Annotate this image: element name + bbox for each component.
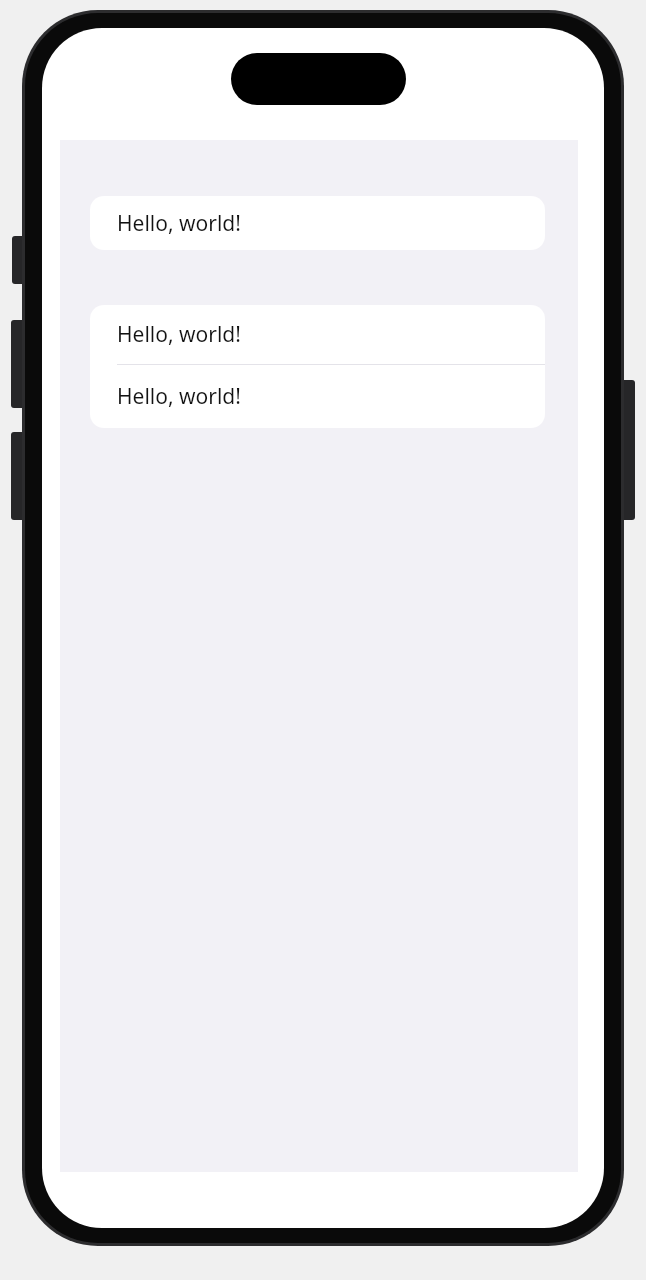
staticText: Hello, world!	[117, 209, 241, 238]
button[interactable]: Hello, world!	[90, 365, 545, 428]
staticText: Hello, world!	[117, 382, 241, 411]
button[interactable]: Hello, world!	[90, 196, 545, 250]
staticText: Hello, world!	[117, 320, 241, 349]
button[interactable]: Hello, world!	[90, 305, 545, 364]
